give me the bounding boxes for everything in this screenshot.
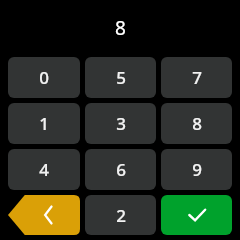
button[interactable]: Backspace [8,195,80,235]
button[interactable]: 8 [161,103,232,144]
button[interactable]: 6 [85,149,156,190]
button[interactable]: 9 [161,149,232,190]
staticText: 8 [115,15,126,41]
button[interactable]: 2 [85,195,156,235]
staticText: 6 [116,158,126,181]
staticText: 2 [116,204,126,227]
button[interactable]: 1 [8,103,80,144]
button[interactable]: 5 [85,57,156,98]
staticText: 7 [192,66,202,89]
button[interactable]: Confirm [161,195,232,235]
staticText: 0 [39,66,49,89]
button[interactable]: 7 [161,57,232,98]
button[interactable]: 0 [8,57,80,98]
staticText: 4 [39,158,49,181]
staticText: 3 [116,112,126,135]
staticText: 5 [116,66,126,89]
button[interactable]: 4 [8,149,80,190]
staticText: 1 [39,112,49,135]
button[interactable]: 3 [85,103,156,144]
staticText: 9 [192,158,202,181]
staticText: 8 [192,112,202,135]
